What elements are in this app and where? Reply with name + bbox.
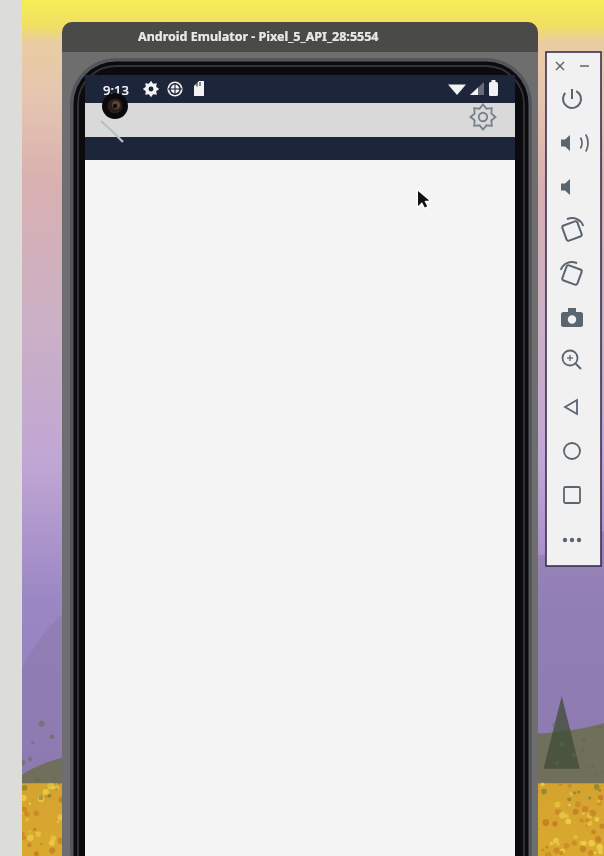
button[interactable]: Volume up [552, 123, 594, 163]
button[interactable]: Volume down [552, 167, 594, 207]
staticText: Android Emulator - Pixel_5_API_28:5554 [138, 28, 379, 45]
button[interactable]: Home [552, 431, 594, 471]
button[interactable]: Minimize [578, 56, 598, 76]
button[interactable]: More options [552, 520, 594, 560]
button[interactable]: Take screenshot [552, 298, 594, 338]
button[interactable]: Back [90, 111, 134, 155]
button[interactable]: Back [552, 387, 594, 427]
button[interactable]: Zoom [552, 342, 594, 382]
staticText: 9:13 [103, 81, 129, 99]
button[interactable]: Rotate right [552, 255, 594, 295]
staticText: SETTINGS [264, 123, 336, 141]
button[interactable]: Recents [552, 475, 594, 515]
button[interactable]: Power [552, 79, 594, 119]
button[interactable]: Rotate left [552, 211, 594, 251]
button[interactable]: Settings [462, 96, 504, 138]
button[interactable]: Close [550, 56, 570, 76]
